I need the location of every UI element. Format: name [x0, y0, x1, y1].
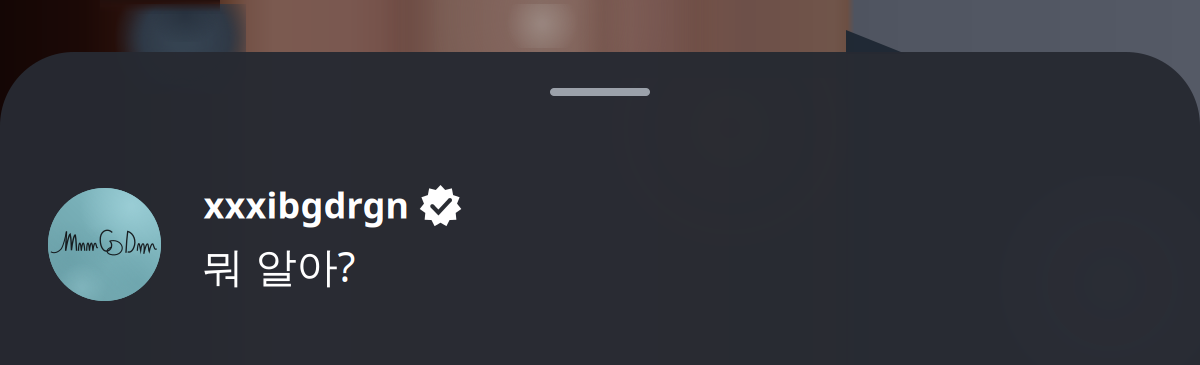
staticText: 뭐 알아? — [202, 239, 355, 293]
staticText: xxxibgdrgn — [203, 181, 408, 228]
